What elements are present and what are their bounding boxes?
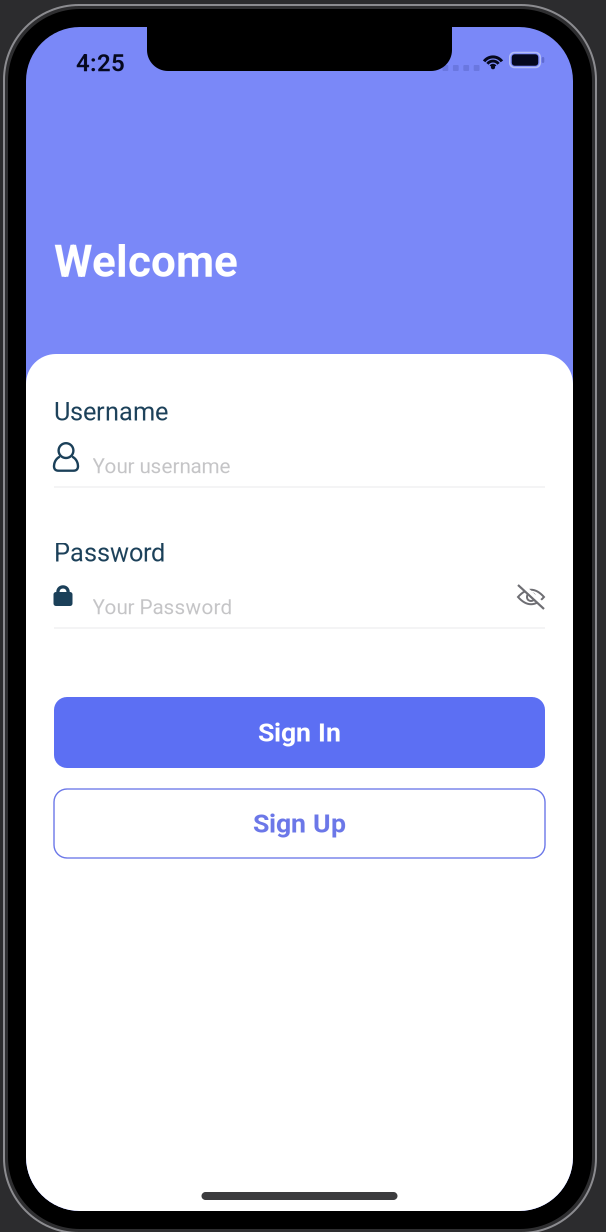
staticText: Your Password bbox=[92, 595, 232, 619]
staticText: 4:25 bbox=[76, 49, 125, 77]
button[interactable]: Show password bbox=[510, 576, 552, 618]
staticText: Your username bbox=[92, 454, 230, 478]
staticText: Password bbox=[54, 538, 165, 568]
button[interactable]: Sign In bbox=[54, 697, 545, 768]
button[interactable]: Sign Up bbox=[54, 789, 545, 858]
staticText: Sign Up bbox=[253, 808, 346, 839]
staticText: Sign In bbox=[258, 717, 341, 748]
staticText: Welcome bbox=[54, 236, 238, 288]
staticText: Username bbox=[54, 397, 168, 427]
